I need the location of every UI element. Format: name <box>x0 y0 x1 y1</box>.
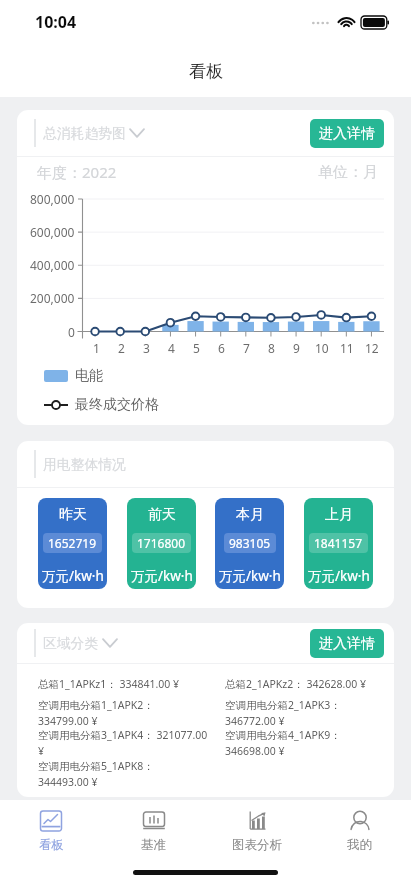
staticText: 总消耗趋势图 <box>43 125 126 142</box>
staticText: 400,000 <box>30 257 75 273</box>
staticText: 万元/kw·h <box>131 567 193 585</box>
staticText: 5 <box>193 340 200 356</box>
staticText: 3 <box>143 340 150 356</box>
staticText: 空调用电分箱3_1APK4： 321077.00 ¥ <box>38 728 208 758</box>
staticText: 0 <box>68 324 75 340</box>
staticText: 用电整体情况 <box>43 456 126 473</box>
staticText: 600,000 <box>30 224 75 240</box>
button[interactable]: 图表分析 <box>205 800 308 859</box>
staticText: 总箱1_1APKz1： 334841.00 ¥ <box>38 677 180 691</box>
staticText: 983105 <box>229 535 271 551</box>
button[interactable]: 进入详情 <box>310 629 384 658</box>
staticText: 800,000 <box>30 191 75 207</box>
staticText: 单位：月 <box>318 163 378 182</box>
staticText: 我的 <box>347 837 372 853</box>
button[interactable]: 前天 <box>127 498 196 589</box>
button[interactable]: 看板 <box>0 800 102 859</box>
staticText: 1716800 <box>137 535 186 551</box>
staticText: 1841157 <box>314 535 363 551</box>
staticText: 电能 <box>75 367 103 385</box>
staticText: 万元/kw·h <box>219 567 281 585</box>
staticText: 1652719 <box>48 535 97 551</box>
button[interactable]: 基准 <box>102 800 205 859</box>
staticText: 4 <box>168 340 175 356</box>
staticText: 前天 <box>148 506 176 524</box>
staticText: 进入详情 <box>319 635 375 653</box>
staticText: 进入详情 <box>319 125 375 143</box>
staticText: 12 <box>365 340 379 356</box>
staticText: 8 <box>268 340 275 356</box>
staticText: 上月 <box>325 506 353 524</box>
staticText: 本月 <box>236 506 264 524</box>
staticText: 图表分析 <box>232 837 282 853</box>
staticText: 万元/kw·h <box>308 567 370 585</box>
staticText: 6 <box>218 340 225 356</box>
staticText: 看板 <box>39 837 64 853</box>
button[interactable]: 本月 <box>215 498 284 589</box>
staticText: 万元/kw·h <box>42 567 104 585</box>
button[interactable]: 昨天 <box>38 498 107 589</box>
staticText: 空调用电分箱4_1APK9： 346698.00 ¥ <box>225 728 341 758</box>
staticText: 7 <box>243 340 250 356</box>
staticText: 基准 <box>141 837 166 853</box>
button[interactable]: 上月 <box>304 498 373 589</box>
staticText: 区域分类 <box>43 635 99 652</box>
staticText: 最终成交价格 <box>75 396 159 414</box>
staticText: 空调用电分箱5_1APK8： 344493.00 ¥ <box>38 759 154 789</box>
staticText: 9 <box>293 340 300 356</box>
staticText: 200,000 <box>30 290 75 306</box>
staticText: 年度：2022 <box>37 162 117 182</box>
staticText: 空调用电分箱2_1APK3： 346772.00 ¥ <box>225 698 341 728</box>
button[interactable]: 进入详情 <box>310 119 384 148</box>
staticText: 10 <box>315 340 329 356</box>
staticText: 1 <box>93 340 100 356</box>
button[interactable]: 我的 <box>308 800 411 859</box>
staticText: 空调用电分箱1_1APK2： 334799.00 ¥ <box>38 698 154 728</box>
staticText: 11 <box>340 340 354 356</box>
staticText: 10:04 <box>35 11 77 33</box>
staticText: 看板 <box>189 61 223 82</box>
staticText: 总箱2_1APKz2： 342628.00 ¥ <box>225 677 367 691</box>
staticText: 昨天 <box>59 506 87 524</box>
staticText: 2 <box>118 340 125 356</box>
